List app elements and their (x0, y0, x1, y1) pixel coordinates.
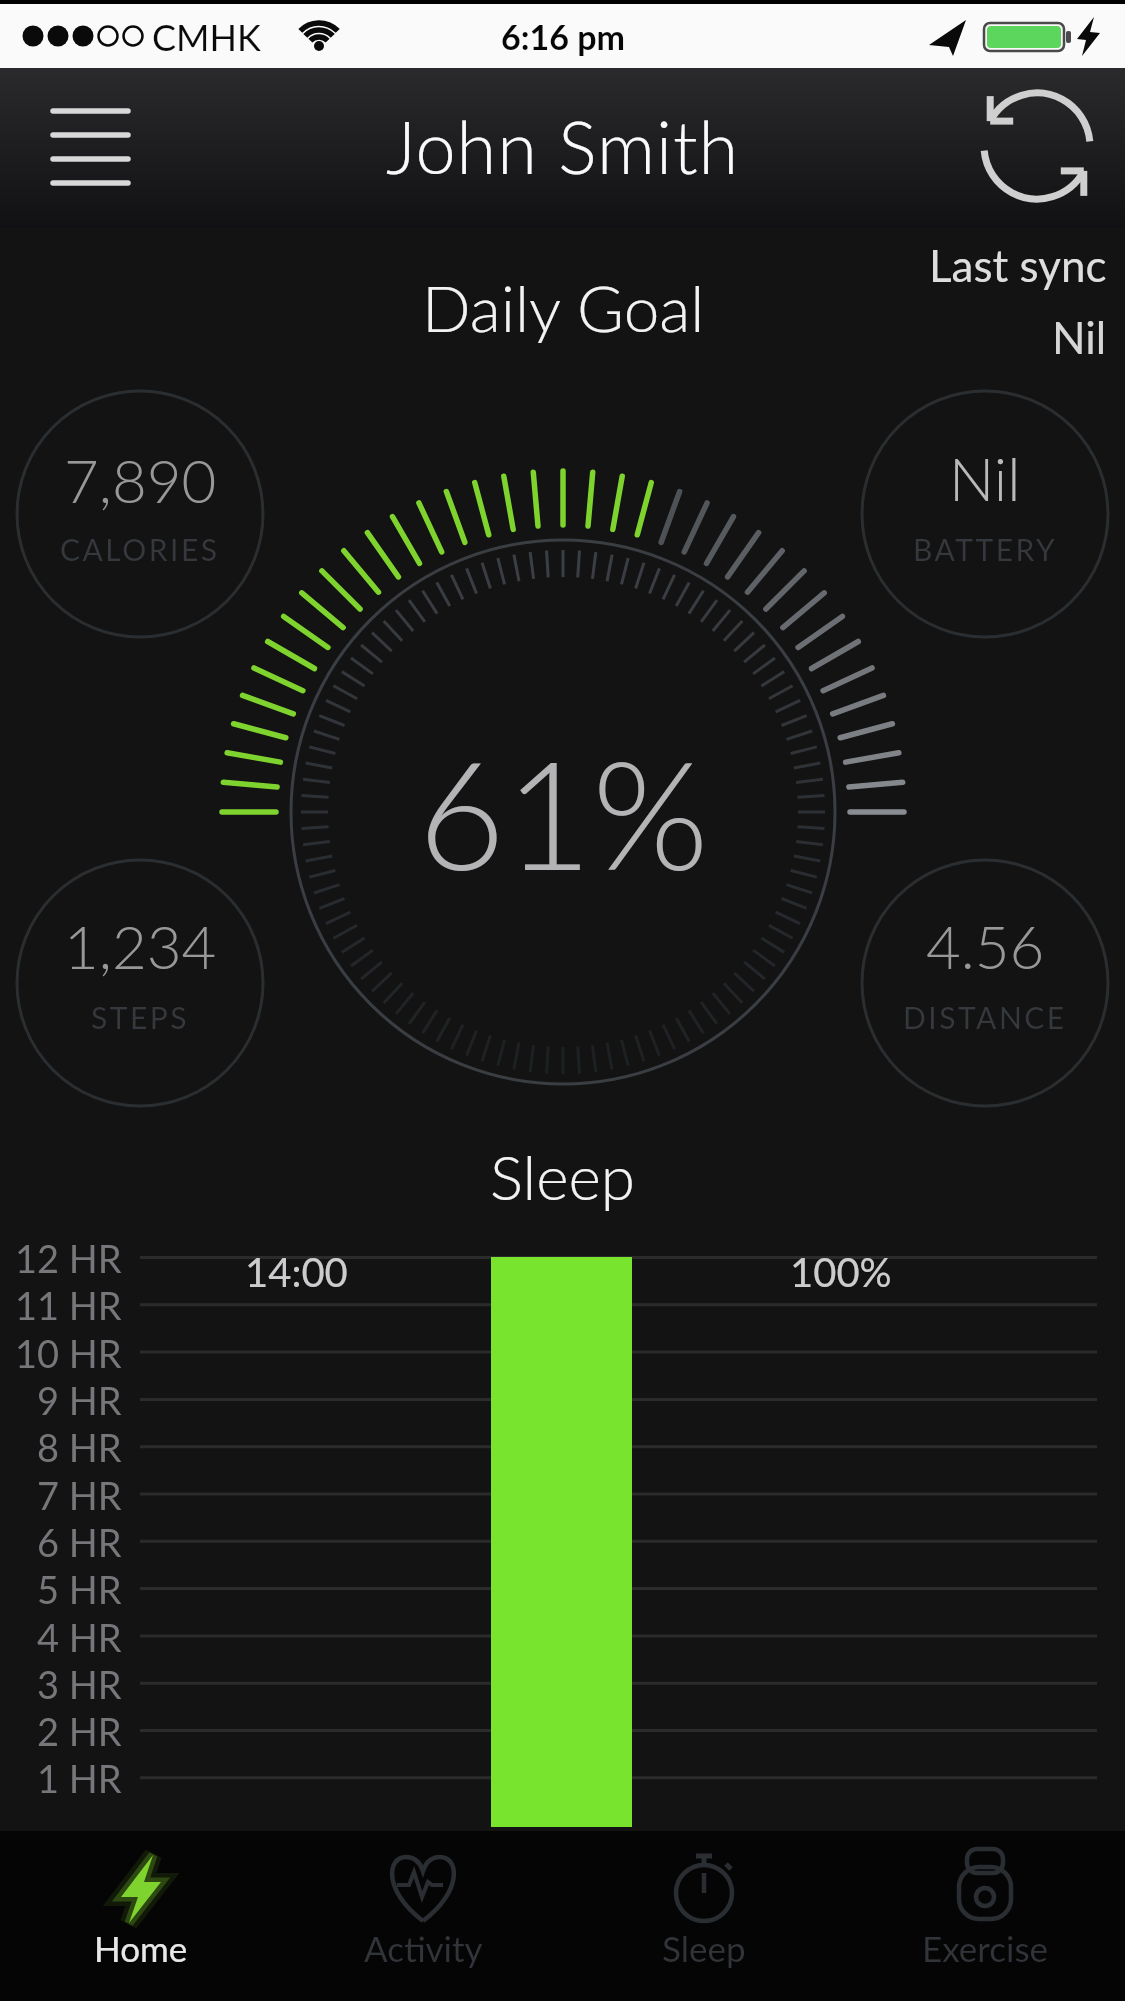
staticText: 9 HR (37, 1377, 122, 1423)
staticText: 4 HR (37, 1614, 122, 1660)
staticText: 14:00 (245, 1248, 348, 1296)
staticText: Sleep (662, 1927, 746, 1969)
staticText: Last sync (929, 239, 1107, 292)
staticText: 12 HR (15, 1235, 122, 1281)
staticText: 2 HR (37, 1708, 122, 1754)
staticText: CMHK (152, 15, 261, 58)
staticText: DISTANCE (903, 999, 1067, 1035)
button[interactable] (974, 88, 1094, 208)
staticText: 7 HR (37, 1472, 122, 1518)
button[interactable]: Home (0, 1831, 282, 2001)
staticText: 6:16 pm (501, 16, 625, 57)
button[interactable]: Exercise (844, 1831, 1125, 2001)
staticText: 4.56 (926, 910, 1045, 982)
staticText: Daily Goal (422, 269, 705, 346)
button[interactable] (30, 86, 150, 210)
staticText: 8 HR (37, 1424, 122, 1470)
staticText: BATTERY (913, 531, 1058, 567)
staticText: Activity (364, 1927, 483, 1969)
button[interactable]: Sleep (563, 1831, 844, 2001)
staticText: 5 HR (37, 1566, 122, 1612)
staticText: 100% (790, 1248, 892, 1296)
staticText: Nil (1052, 311, 1107, 364)
staticText: Sleep (490, 1139, 636, 1213)
staticText: John Smith (386, 103, 740, 189)
staticText: 1 HR (37, 1755, 122, 1801)
button[interactable]: Activity (282, 1831, 563, 2001)
staticText: 7,890 (64, 444, 217, 516)
staticText: Home (94, 1927, 188, 1969)
staticText: Exercise (922, 1927, 1049, 1969)
staticText: 1,234 (64, 910, 217, 982)
staticText: 61% (418, 722, 709, 902)
staticText: 3 HR (37, 1661, 122, 1707)
staticText: CALORIES (60, 531, 220, 567)
staticText: Nil (949, 442, 1021, 514)
staticText: 6 HR (37, 1519, 122, 1565)
staticText: 11 HR (15, 1282, 122, 1328)
staticText: 10 HR (15, 1330, 122, 1376)
staticText: STEPS (91, 999, 190, 1035)
